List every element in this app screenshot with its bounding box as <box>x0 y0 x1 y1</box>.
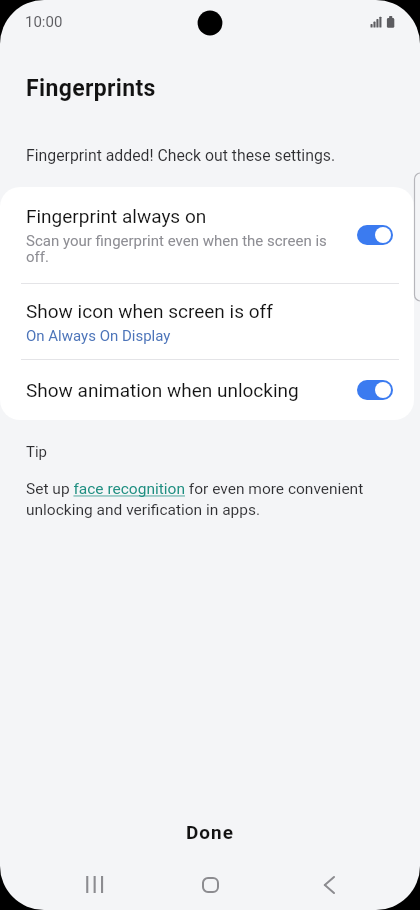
staticText: Fingerprints <box>26 75 156 102</box>
staticText: Show animation when unlocking <box>26 379 299 401</box>
button[interactable]: Toggle <box>357 380 393 400</box>
button[interactable]: Recents <box>63 859 119 910</box>
staticText: Fingerprint always on <box>26 205 207 227</box>
staticText: Done <box>186 821 235 843</box>
staticText: 10:00 <box>25 13 63 31</box>
button[interactable]: Home <box>182 859 238 910</box>
button[interactable]: Back <box>301 859 357 910</box>
staticText: Set up face recognition for even more co… <box>26 480 371 519</box>
staticText: Show icon when screen is off <box>26 300 273 322</box>
button[interactable]: Show animation when unlocking <box>0 359 414 420</box>
button[interactable]: face recognition <box>72 481 186 500</box>
button[interactable]: Fingerprint always on <box>0 187 414 283</box>
staticText: Tip <box>26 443 48 461</box>
button[interactable]: Show icon when screen is off <box>0 283 414 359</box>
staticText: Scan your fingerprint even when the scre… <box>26 232 338 266</box>
button[interactable]: Toggle <box>357 225 393 245</box>
staticText: Fingerprint added! Check out these setti… <box>26 146 336 165</box>
staticText: On Always On Display <box>26 327 171 345</box>
button[interactable]: Done <box>0 812 420 852</box>
